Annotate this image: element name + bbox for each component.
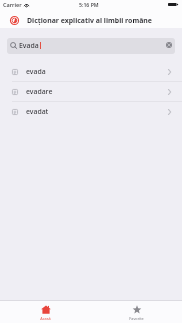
staticText: Dicționar explicativ al limbii române xyxy=(27,16,152,25)
button[interactable]: evadare xyxy=(0,82,182,101)
button[interactable]: Acasă xyxy=(0,301,91,323)
button[interactable]: Clear search text xyxy=(166,42,172,48)
button[interactable]: evadat xyxy=(0,102,182,121)
staticText: Acasă xyxy=(40,316,51,321)
staticText: Favorite xyxy=(129,316,144,321)
staticText: evadat xyxy=(26,107,49,116)
button[interactable]: evada xyxy=(0,62,182,81)
staticText: evada xyxy=(26,67,46,76)
staticText: Carrier xyxy=(3,1,22,8)
staticText: Evada xyxy=(19,41,39,50)
staticText: evadare xyxy=(26,87,53,96)
staticText: 5:16 PM xyxy=(79,1,99,8)
button[interactable]: Evada xyxy=(7,38,175,54)
button[interactable]: Favorite xyxy=(91,301,182,323)
button[interactable]: App menu xyxy=(8,14,20,26)
